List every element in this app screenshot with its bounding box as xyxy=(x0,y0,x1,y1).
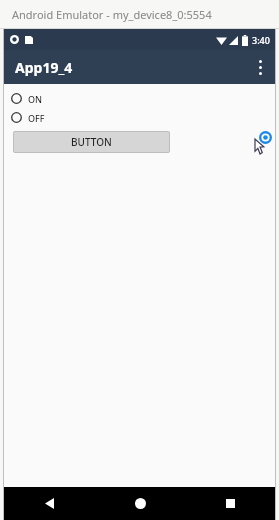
staticText: Android Emulator - my_device8_0:5554 xyxy=(12,7,212,22)
staticText: BUTTON xyxy=(71,135,112,149)
button[interactable]: Home xyxy=(95,487,185,520)
staticText: ON xyxy=(28,93,43,105)
button[interactable]: More options xyxy=(245,50,275,84)
staticText: OFF xyxy=(28,112,45,124)
button[interactable]: Back xyxy=(4,487,95,520)
staticText: App19_4 xyxy=(15,58,73,77)
button[interactable]: Recent apps xyxy=(185,487,275,520)
button[interactable]: OFF xyxy=(11,108,45,127)
button[interactable]: ON xyxy=(11,89,43,108)
button[interactable]: BUTTON xyxy=(13,131,170,153)
staticText: 3:40 xyxy=(252,34,270,46)
